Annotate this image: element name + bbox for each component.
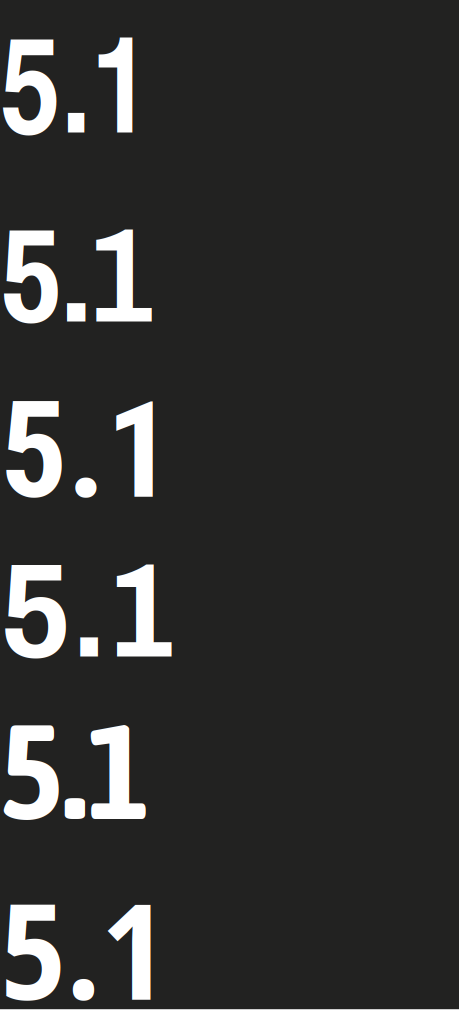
staticText: 5.1 [0,539,175,684]
staticText: 5.1 [0,694,150,847]
staticText: 5.1 [0,183,152,363]
staticText: 5.1 [0,0,152,173]
staticText: 5.1 [0,373,173,529]
staticText: 5.1 [0,857,167,1024]
